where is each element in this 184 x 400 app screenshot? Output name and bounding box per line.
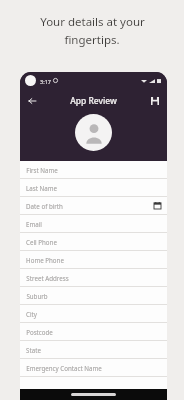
staticText: Postcode — [26, 328, 53, 336]
button[interactable]: Save — [147, 93, 163, 109]
staticText: Your details at your — [40, 14, 145, 30]
button[interactable]: Home Phone — [20, 251, 167, 269]
button[interactable]: Email — [20, 215, 167, 233]
staticText: App Review — [70, 95, 117, 107]
staticText: First Name — [26, 166, 58, 174]
button[interactable]: City — [20, 305, 167, 323]
button[interactable]: Street Address — [20, 269, 167, 287]
staticText: Cell Phone — [26, 238, 57, 246]
button[interactable]: Profile photo — [75, 114, 112, 151]
staticText: Last Name — [26, 184, 57, 192]
staticText: 3:17 — [40, 78, 51, 85]
staticText: Suburb — [26, 292, 48, 300]
staticText: Street Address — [26, 274, 69, 282]
staticText: Date of birth — [26, 202, 63, 210]
button[interactable]: State — [20, 341, 167, 359]
staticText: Emergency Contact Name — [26, 364, 102, 372]
button[interactable]: Home — [71, 393, 116, 396]
button[interactable]: First Name — [20, 161, 167, 179]
button[interactable]: Date of birth — [20, 197, 167, 215]
button[interactable]: Emergency Contact Name — [20, 359, 167, 377]
staticText: Email — [26, 220, 42, 228]
button[interactable]: Cell Phone — [20, 233, 167, 251]
staticText: City — [26, 310, 37, 318]
staticText: Home Phone — [26, 256, 64, 264]
staticText: fingertips. — [64, 32, 120, 48]
button[interactable]: Postcode — [20, 323, 167, 341]
button[interactable]: Suburb — [20, 287, 167, 305]
button[interactable]: Last Name — [20, 179, 167, 197]
staticText: State — [26, 346, 41, 354]
button[interactable]: Back — [24, 93, 40, 109]
